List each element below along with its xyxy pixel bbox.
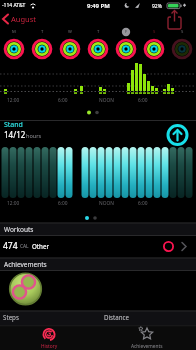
- staticText: S: [181, 29, 184, 35]
- staticText: 474: [3, 240, 18, 252]
- staticText: 14/12: [4, 129, 26, 140]
- staticText: T: [41, 29, 44, 35]
- staticText: 9:49 PM: [87, 2, 110, 10]
- staticText: 6:00: [58, 200, 68, 207]
- staticText: hours: [26, 132, 42, 139]
- staticText: 12:00: [7, 200, 20, 207]
- staticText: Steps: [3, 313, 19, 321]
- staticText: August: [11, 14, 36, 24]
- button[interactable]: [9, 272, 43, 306]
- staticText: 12:00: [7, 97, 20, 104]
- button[interactable]: [98, 326, 196, 350]
- staticText: T: [97, 29, 100, 35]
- staticText: Achievements: [131, 343, 163, 350]
- staticText: W: [68, 29, 72, 35]
- button[interactable]: [0, 326, 98, 350]
- staticText: 92%: [152, 3, 162, 10]
- staticText: Achievements: [4, 260, 47, 269]
- staticText: Other: [32, 242, 49, 250]
- staticText: NOON: [99, 200, 114, 207]
- staticText: CAL: [20, 243, 29, 250]
- button[interactable]: [0, 11, 50, 27]
- staticText: NOON: [99, 97, 114, 104]
- button[interactable]: [0, 236, 196, 257]
- button[interactable]: [163, 121, 193, 149]
- button[interactable]: [163, 9, 187, 31]
- staticText: M: [12, 29, 16, 35]
- staticText: 6:00: [138, 200, 148, 207]
- staticText: -114 AT&T: [2, 2, 26, 9]
- staticText: Distance: [104, 313, 130, 321]
- staticText: 6:00: [58, 97, 68, 104]
- staticText: S: [153, 29, 156, 35]
- staticText: F: [125, 29, 128, 35]
- staticText: 6:00: [138, 97, 148, 104]
- staticText: Workouts: [4, 225, 34, 234]
- staticText: Stand: [4, 120, 23, 130]
- staticText: History: [41, 343, 58, 350]
